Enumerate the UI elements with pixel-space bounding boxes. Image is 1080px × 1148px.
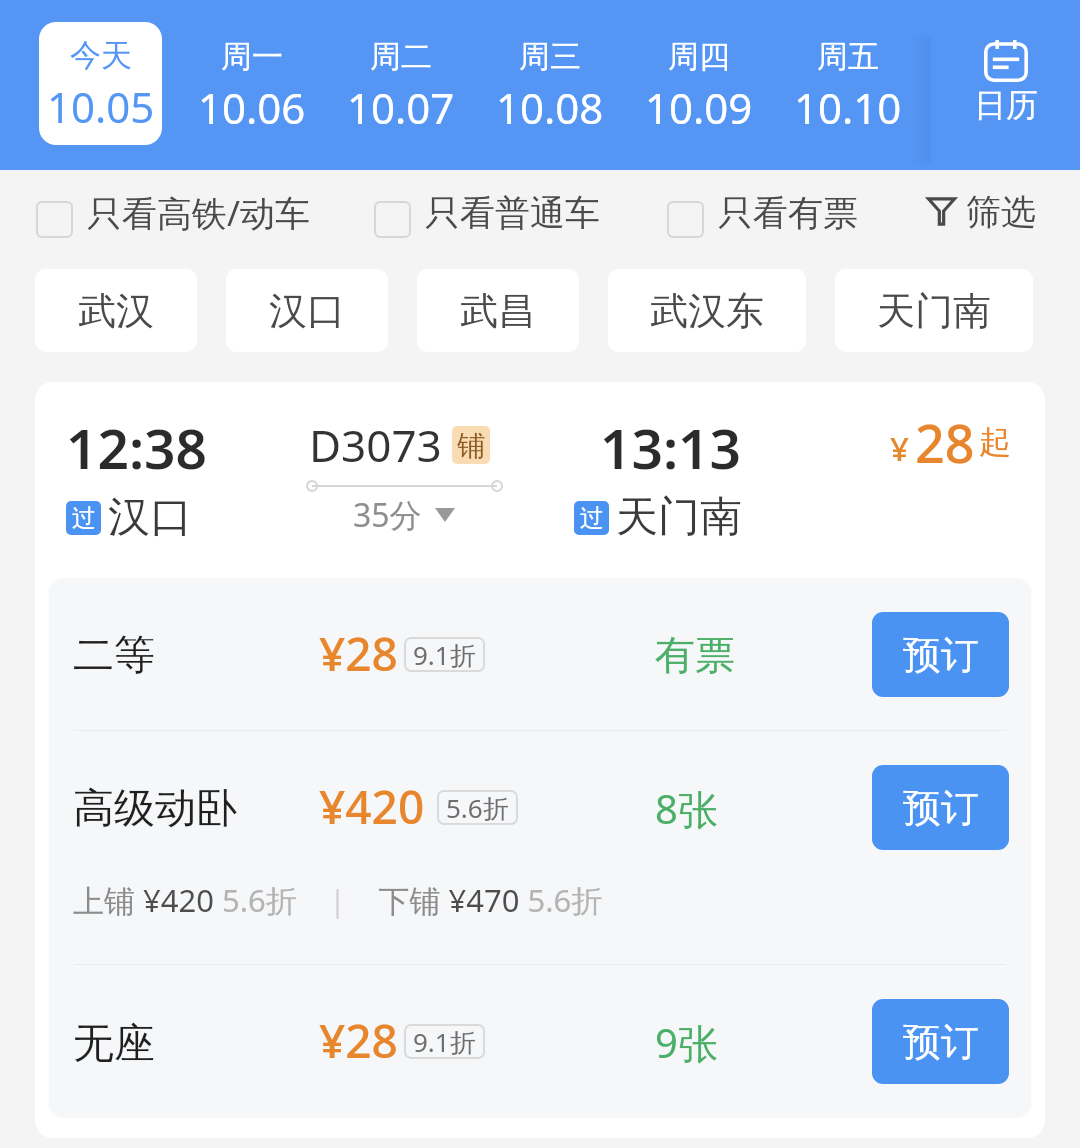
staticText: 13:13 — [600, 410, 742, 485]
staticText: 10.10 — [794, 79, 902, 136]
staticText: 10.08 — [496, 79, 604, 136]
staticText: 预订 — [903, 1018, 979, 1066]
button[interactable]: 周五 — [774, 0, 922, 170]
staticText: ¥28 — [319, 622, 398, 685]
staticText: 武汉东 — [650, 287, 764, 335]
staticText: 武昌 — [460, 287, 536, 335]
staticText: 上铺 ¥420 5.6折 | 下铺 ¥470 5.6折 — [73, 879, 603, 921]
button[interactable]: 今天 — [39, 22, 162, 145]
staticText: 预订 — [903, 784, 979, 832]
staticText: 只看有票 — [718, 191, 858, 235]
staticText: 武汉 — [78, 287, 154, 335]
button[interactable]: 预订 — [872, 999, 1009, 1084]
button[interactable]: 武昌 — [417, 269, 579, 352]
button[interactable]: 无座 — [49, 965, 1031, 1118]
button[interactable]: 周二 — [327, 0, 475, 170]
staticText: 无座 — [73, 1018, 155, 1070]
staticText: 二等 — [73, 630, 155, 682]
button[interactable]: 预订 — [872, 765, 1009, 850]
staticText: 周一 — [221, 37, 283, 76]
button[interactable]: 预订 — [872, 612, 1009, 697]
button[interactable]: 12:38 — [35, 382, 1045, 1138]
button[interactable]: 周一 — [178, 0, 326, 170]
staticText: 今天 — [70, 36, 132, 75]
button[interactable]: 只看有票 — [667, 188, 858, 250]
staticText: 8张 — [655, 781, 718, 836]
staticText: 筛选 — [966, 190, 1036, 234]
staticText: 12:38 — [66, 410, 208, 485]
staticText: 10.07 — [347, 79, 455, 136]
staticText: ¥28 — [319, 1009, 398, 1072]
staticText: 10.06 — [198, 79, 306, 136]
staticText: 35分 — [353, 493, 422, 537]
staticText: 有票 — [655, 630, 735, 680]
staticText: 铺 — [457, 428, 485, 463]
button[interactable]: 武汉 — [35, 269, 197, 352]
staticText: 高级动卧 — [73, 783, 237, 835]
staticText: 只看普通车 — [425, 191, 600, 235]
button[interactable]: 天门南 — [835, 269, 1033, 352]
staticText: 9.1折 — [413, 637, 476, 672]
staticText: 过 — [580, 503, 604, 533]
staticText: 预订 — [903, 631, 979, 679]
button[interactable]: 日历 — [931, 0, 1080, 170]
staticText: ¥420 — [319, 775, 425, 838]
staticText: 过 — [72, 503, 96, 533]
button[interactable]: 周三 — [476, 0, 624, 170]
button[interactable]: 二等 — [49, 578, 1031, 730]
staticText: 10.05 — [47, 78, 155, 135]
button[interactable]: 高级动卧 — [49, 731, 1031, 964]
staticText: 天门南 — [877, 287, 991, 335]
staticText: 周四 — [668, 37, 730, 76]
staticText: 周三 — [519, 37, 581, 76]
button[interactable]: 汉口 — [226, 269, 388, 352]
staticText: 周二 — [370, 37, 432, 76]
staticText: 汉口 — [108, 491, 192, 544]
staticText: 周五 — [817, 37, 879, 76]
button[interactable]: 只看普通车 — [374, 188, 600, 250]
staticText: 9张 — [655, 1015, 718, 1070]
staticText: 日历 — [974, 85, 1038, 125]
staticText: 28 — [915, 407, 975, 478]
staticText: 汉口 — [269, 287, 345, 335]
staticText: ¥ — [890, 426, 909, 471]
staticText: 只看高铁/动车 — [87, 189, 311, 237]
staticText: 10.09 — [645, 79, 753, 136]
button[interactable]: 筛选 — [928, 188, 1036, 250]
staticText: 天门南 — [616, 491, 742, 544]
staticText: 5.6折 — [446, 790, 509, 825]
button[interactable]: 只看高铁/动车 — [36, 188, 311, 250]
button[interactable]: 周四 — [625, 0, 773, 170]
button[interactable]: 武汉东 — [608, 269, 806, 352]
staticText: 起 — [979, 422, 1011, 462]
staticText: D3073 — [309, 415, 442, 475]
staticText: 9.1折 — [413, 1024, 476, 1059]
